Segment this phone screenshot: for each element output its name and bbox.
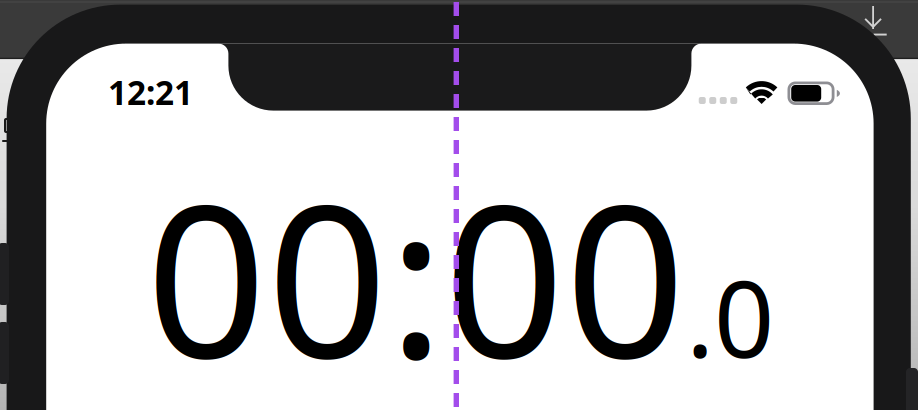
staticText: .0 <box>686 247 774 387</box>
staticText: 00:00 <box>146 136 686 410</box>
staticText: 12:21 <box>108 70 193 114</box>
button[interactable]: Download <box>852 0 896 40</box>
